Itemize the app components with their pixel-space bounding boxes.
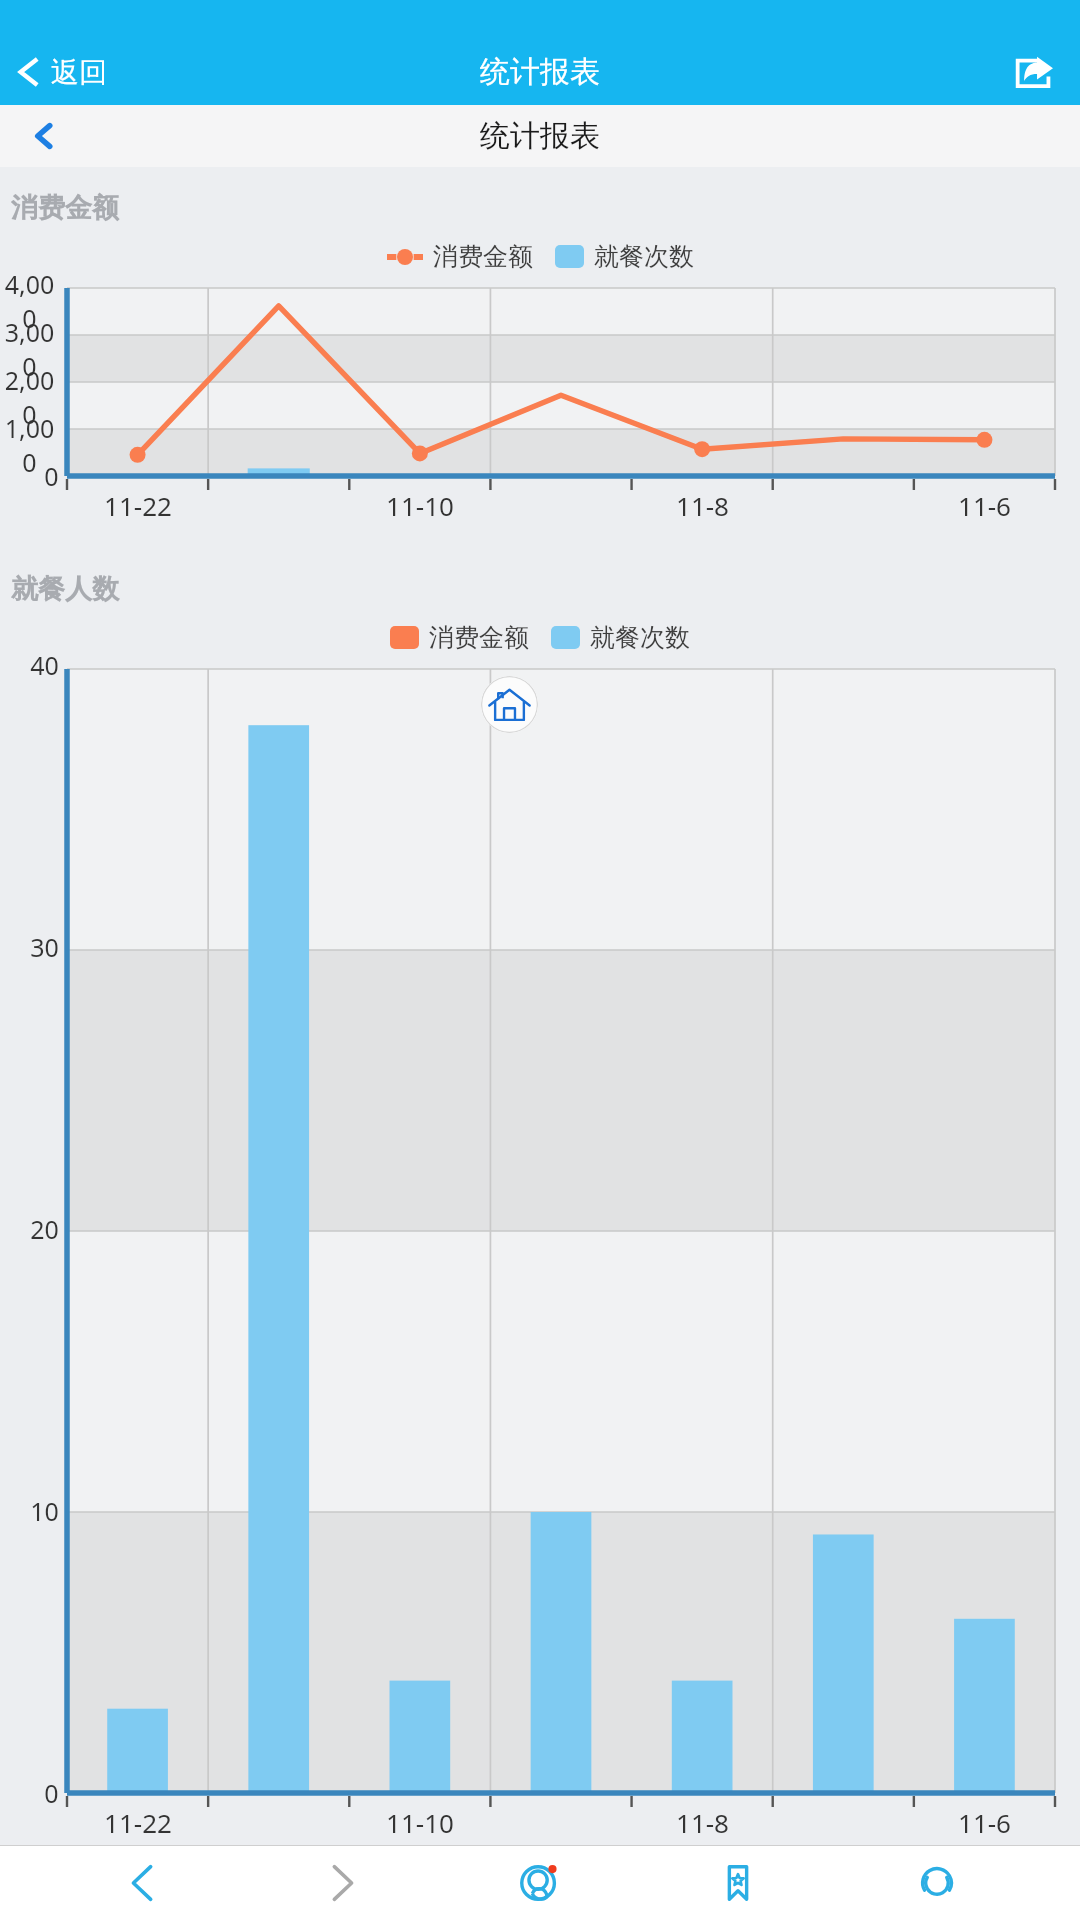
staticText: 就餐次数 <box>594 241 694 272</box>
staticText: 20 <box>30 1212 59 1246</box>
staticText: 1,000 <box>0 411 59 479</box>
staticText: 0 <box>44 459 59 493</box>
staticText: 11-22 <box>104 488 172 523</box>
staticText: 统计报表 <box>480 53 600 91</box>
staticText: 11-6 <box>958 488 1011 523</box>
staticText: 11-8 <box>676 488 729 523</box>
staticText: 10 <box>30 1494 59 1528</box>
button[interactable]: Next <box>287 1846 397 1920</box>
staticText: 就餐人数 <box>11 572 119 606</box>
staticText: 11-22 <box>104 1805 172 1840</box>
staticText: 11-10 <box>386 1805 454 1840</box>
staticText: 30 <box>30 930 59 964</box>
staticText: 2,000 <box>0 363 59 431</box>
button[interactable]: 返回 <box>12 39 107 105</box>
staticText: 消费金额 <box>429 622 529 653</box>
staticText: 40 <box>30 648 59 682</box>
staticText: 11-6 <box>958 1805 1011 1840</box>
button[interactable]: Share <box>988 39 1080 105</box>
staticText: 统计报表 <box>480 117 600 155</box>
staticText: 3,000 <box>0 315 59 383</box>
button[interactable]: Previous <box>88 1846 198 1920</box>
staticText: 消费金额 <box>433 241 533 272</box>
staticText: 消费金额 <box>11 191 119 225</box>
button[interactable]: Bookmark <box>683 1846 793 1920</box>
staticText: 4,000 <box>0 267 59 335</box>
button[interactable]: Messages <box>485 1846 595 1920</box>
button[interactable]: Back <box>0 105 88 167</box>
staticText: 11-10 <box>386 488 454 523</box>
button[interactable]: Refresh <box>882 1846 992 1920</box>
staticText: 0 <box>44 1776 59 1810</box>
staticText: 11-8 <box>676 1805 729 1840</box>
staticText: 就餐次数 <box>590 622 690 653</box>
staticText: 返回 <box>51 55 107 90</box>
button[interactable]: Home <box>481 676 538 733</box>
